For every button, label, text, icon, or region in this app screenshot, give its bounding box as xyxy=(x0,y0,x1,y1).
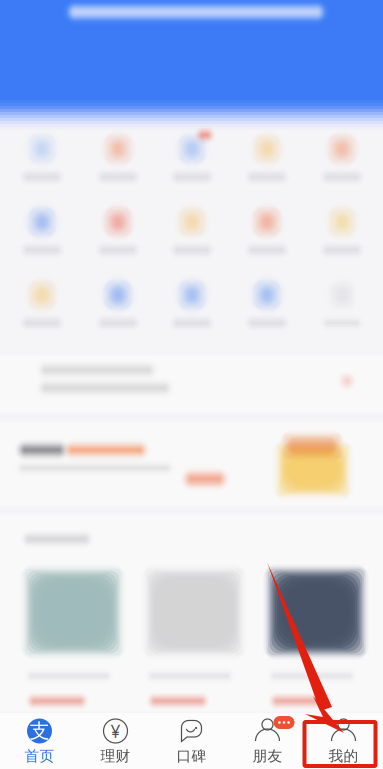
staticText: 首页 xyxy=(24,747,54,765)
staticText: 理财 xyxy=(100,747,130,765)
button[interactable]: 口碑 xyxy=(153,717,229,765)
staticText: 朋友 xyxy=(252,747,282,765)
button[interactable] xyxy=(0,0,383,769)
staticText: ¥ xyxy=(110,719,120,742)
button[interactable]: 我的 xyxy=(305,717,381,765)
button[interactable]: ¥ xyxy=(77,717,153,765)
staticText: 我的 xyxy=(328,747,358,765)
button[interactable] xyxy=(0,0,383,769)
button[interactable]: 支 xyxy=(1,717,77,765)
button[interactable]: 朋友 xyxy=(229,717,305,765)
staticText: 支 xyxy=(29,719,49,743)
staticText: 口碑 xyxy=(176,747,206,765)
button[interactable] xyxy=(0,0,383,769)
button[interactable] xyxy=(0,0,383,769)
button[interactable] xyxy=(0,0,383,769)
